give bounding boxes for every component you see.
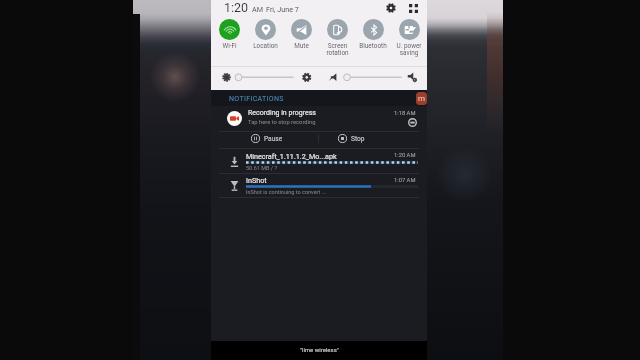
staticText: Tap here to stop recording (248, 119, 316, 126)
button[interactable]: Notification app icon (416, 92, 427, 105)
button[interactable]: InShot (211, 174, 427, 198)
staticText: U. power saving (396, 42, 422, 56)
button[interactable]: Location (247, 18, 283, 50)
staticText: InShot (246, 176, 267, 184)
button[interactable]: Screen rotation (319, 18, 355, 56)
staticText: Screen rotation (326, 42, 349, 56)
staticText: Mute (294, 42, 309, 50)
staticText: Bluetooth (359, 42, 387, 50)
staticText: AM (252, 5, 263, 13)
staticText: Fri, June 7 (266, 5, 299, 13)
staticText: NOTIFICATIONS (229, 95, 284, 103)
staticText: "lime wireless" (300, 346, 339, 353)
button[interactable]: Minecraft_1.11.1.2_Mo...apk (211, 149, 427, 174)
button[interactable]: Wi-Fi (211, 18, 247, 50)
button[interactable]: Recording in progress (211, 106, 427, 149)
button[interactable]: Edit quick settings (405, 0, 421, 16)
staticText: 1:07 AM (394, 177, 416, 184)
staticText: 1:20 (224, 0, 249, 15)
staticText: Recording in progress (248, 109, 316, 117)
staticText: 50.61 MB / ? (246, 165, 278, 171)
button[interactable]: Stop (319, 131, 427, 146)
staticText: 1:18 AM (394, 110, 416, 117)
button[interactable]: Pause (211, 131, 318, 146)
staticText: 1:20 AM (394, 152, 416, 159)
button[interactable]: Bluetooth (355, 18, 391, 50)
staticText: Wi-Fi (222, 42, 237, 50)
button[interactable]: Settings (383, 0, 399, 16)
staticText: m (418, 94, 426, 103)
staticText: Minecraft_1.11.1.2_Mo...apk (246, 152, 337, 160)
staticText: Stop (351, 135, 365, 143)
staticText: InShot is continuing to convert ... (246, 189, 327, 195)
button[interactable]: U. power saving (391, 18, 427, 56)
staticText: Pause (264, 135, 283, 143)
staticText: Location (253, 42, 278, 50)
button[interactable]: Mute (283, 18, 319, 50)
